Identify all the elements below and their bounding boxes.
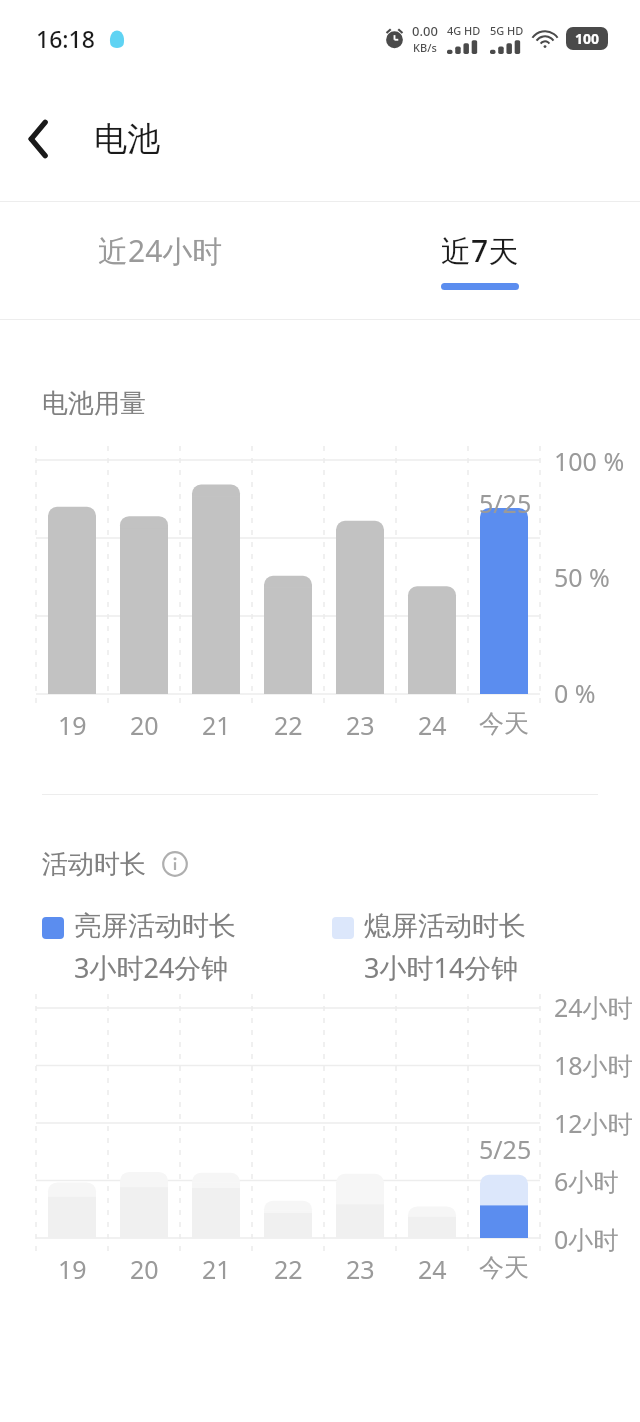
staticText: 20 xyxy=(130,1252,159,1286)
staticText: 19 xyxy=(58,708,87,742)
staticText: 0.00 xyxy=(412,22,438,40)
staticText: 今天 xyxy=(479,708,529,739)
staticText: 18小时 xyxy=(554,1048,633,1082)
staticText: 22 xyxy=(274,1252,303,1286)
staticText: 23 xyxy=(346,1252,375,1286)
staticText: 100 % xyxy=(554,444,625,478)
staticText: 电池用量 xyxy=(42,387,146,420)
staticText: HD xyxy=(507,23,524,38)
button[interactable]: 说明 xyxy=(158,847,192,881)
button[interactable]: 近7天 xyxy=(320,202,640,319)
staticText: 24 xyxy=(418,1252,447,1286)
staticText: 活动时长 xyxy=(42,848,146,881)
staticText: 亮屏活动时长 xyxy=(74,909,236,943)
staticText: 熄屏活动时长 xyxy=(364,909,526,943)
staticText: 12小时 xyxy=(554,1106,633,1140)
staticText: 21 xyxy=(202,708,231,742)
staticText: 22 xyxy=(274,708,303,742)
staticText: 5G xyxy=(490,23,505,38)
staticText: 100 xyxy=(575,29,600,48)
staticText: 20 xyxy=(130,708,159,742)
staticText: 24小时 xyxy=(554,990,633,1024)
staticText: 21 xyxy=(202,1252,231,1286)
staticText: 0小时 xyxy=(554,1222,619,1256)
staticText: 6小时 xyxy=(554,1164,619,1198)
staticText: 3小时14分钟 xyxy=(364,949,519,986)
staticText: 今天 xyxy=(479,1252,529,1283)
staticText: 16:18 xyxy=(36,23,95,54)
staticText: 24 xyxy=(418,708,447,742)
button[interactable]: 返回 xyxy=(0,100,78,178)
staticText: HD xyxy=(464,23,481,38)
staticText: 5/25 xyxy=(479,486,532,520)
staticText: 50 % xyxy=(554,560,610,594)
staticText: 4G xyxy=(447,23,462,38)
staticText: 近7天 xyxy=(441,230,519,271)
staticText: 5/25 xyxy=(479,1132,532,1166)
staticText: 0 % xyxy=(554,676,596,710)
staticText: 3小时24分钟 xyxy=(74,949,229,986)
staticText: 近24小时 xyxy=(98,230,223,271)
button[interactable]: 近24小时 xyxy=(0,202,320,319)
staticText: 电池 xyxy=(94,118,160,160)
staticText: 19 xyxy=(58,1252,87,1286)
staticText: 23 xyxy=(346,708,375,742)
staticText: KB/s xyxy=(413,40,437,55)
